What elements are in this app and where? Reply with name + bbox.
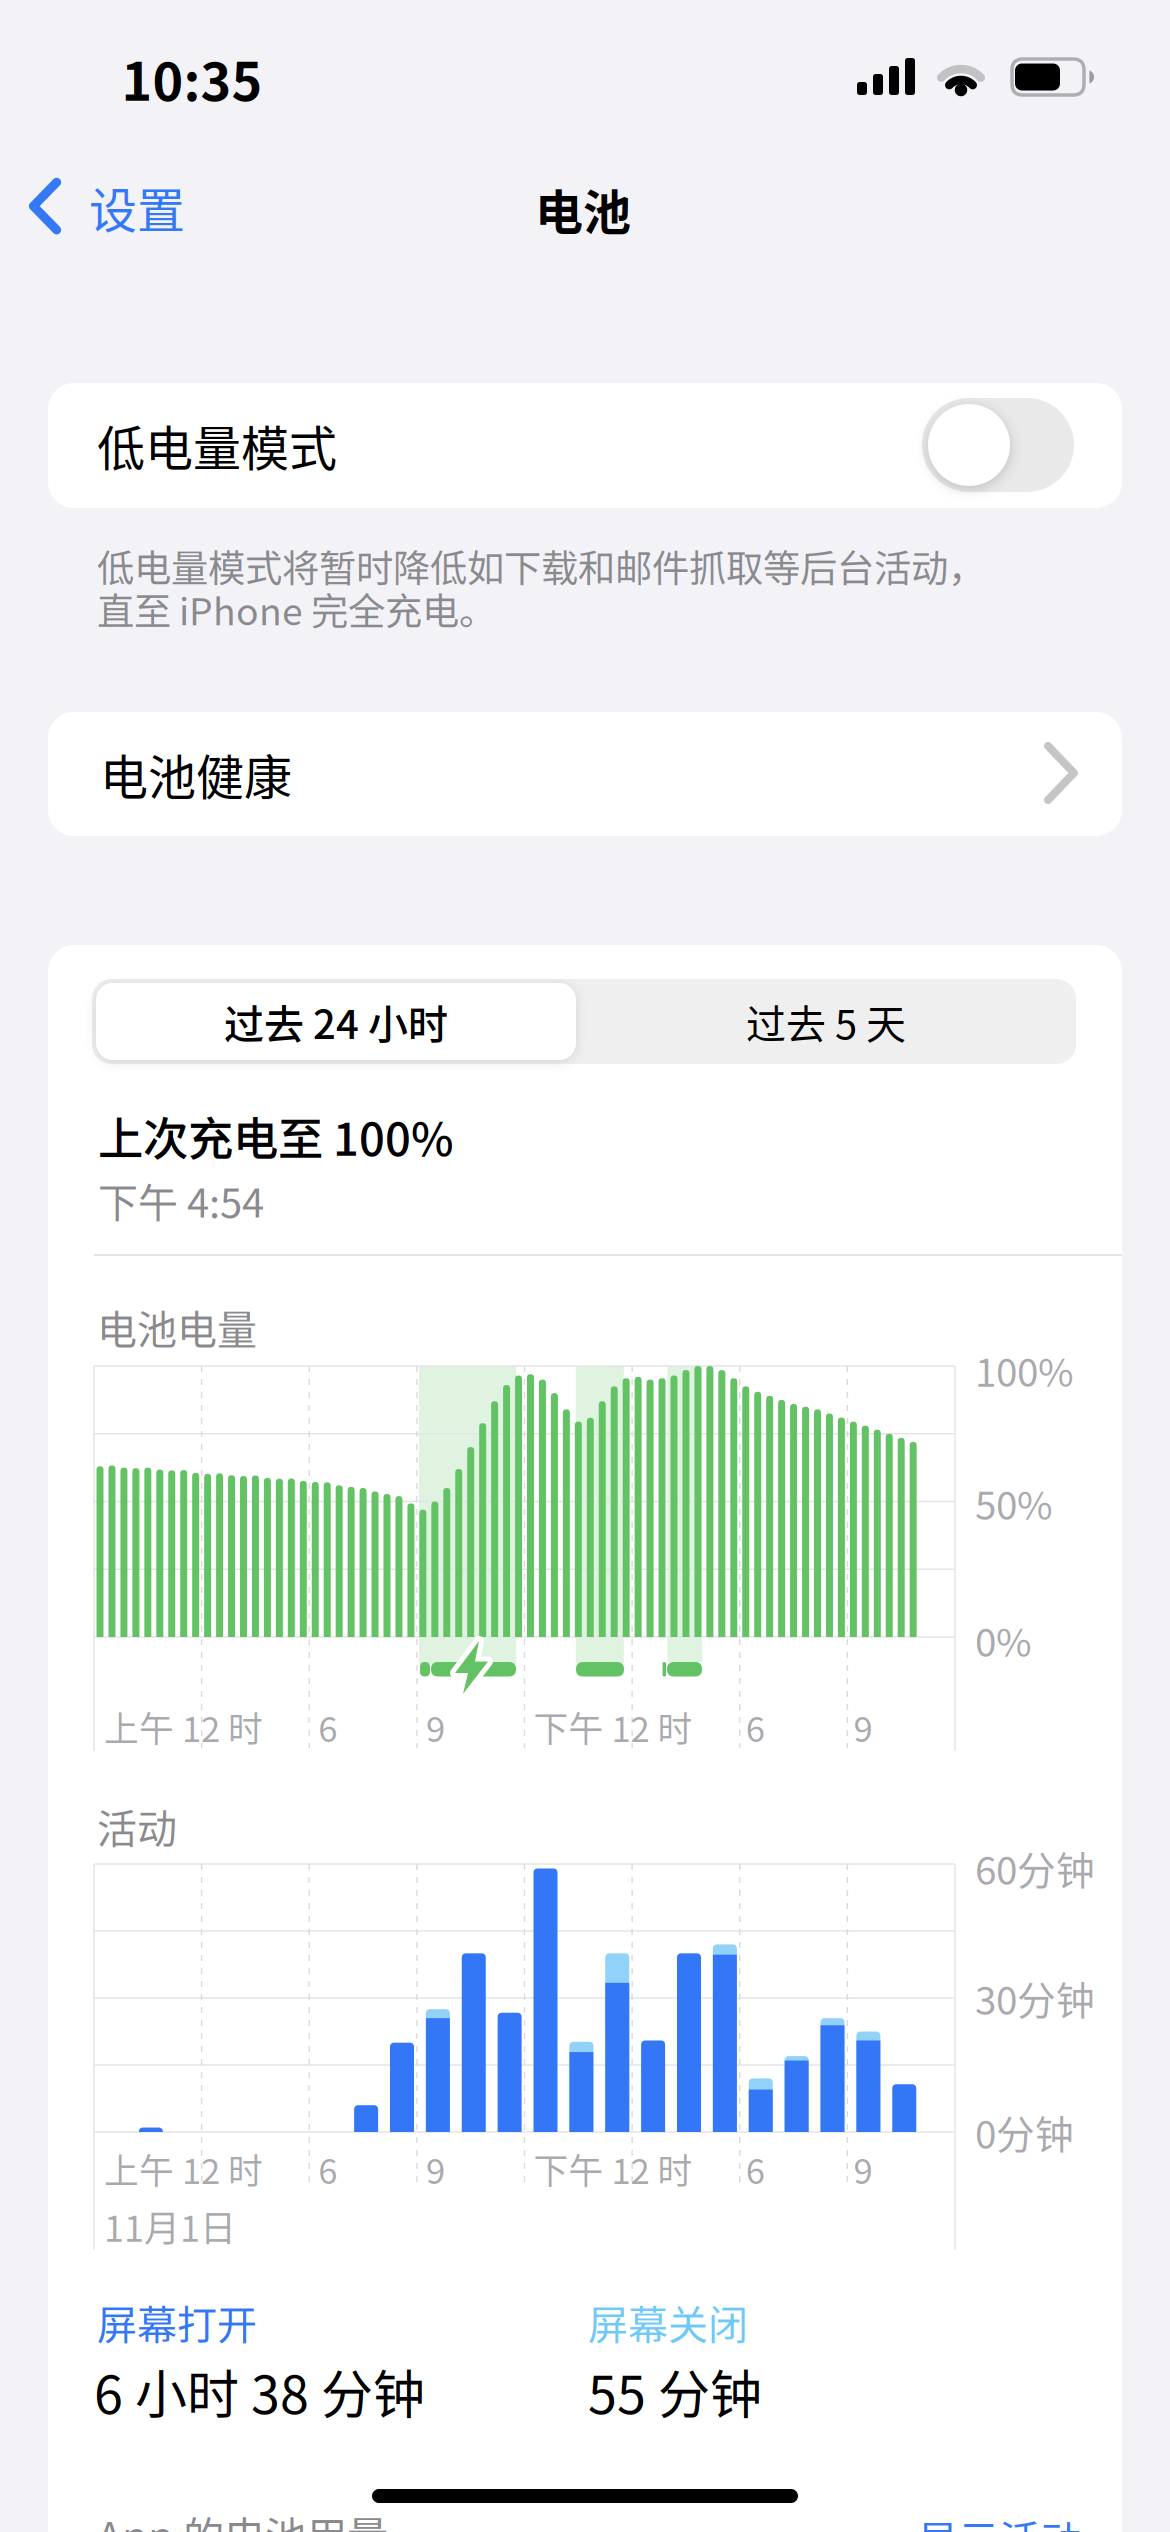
button[interactable]: 低电量模式: [922, 398, 1074, 492]
staticText: 55 分钟: [588, 2354, 762, 2428]
staticText: 电池: [535, 175, 631, 243]
staticText: 下午 12 时: [533, 1702, 692, 1751]
staticText: 9: [426, 2144, 445, 2193]
button[interactable]: 电池健康: [48, 712, 1122, 836]
staticText: 11月1日: [104, 2201, 236, 2251]
staticText: 上次充电至 100%: [98, 1104, 454, 1168]
staticText: 6: [746, 1702, 765, 1751]
staticText: 屏幕打开: [97, 2294, 257, 2350]
staticText: 活动: [97, 1798, 177, 1854]
staticText: 9: [853, 1702, 872, 1751]
staticText: 0%: [975, 1613, 1032, 1667]
staticText: App 的电池用量: [97, 2505, 388, 2532]
button[interactable]: 显示活动: [0, 0, 1170, 2532]
staticText: 下午 4:54: [98, 1172, 264, 1228]
staticText: 6: [318, 1702, 337, 1751]
staticText: 电池电量: [97, 1299, 257, 1355]
staticText: 屏幕关闭: [588, 2294, 748, 2350]
staticText: 过去 5 天: [746, 993, 906, 1050]
staticText: 30分钟: [975, 1971, 1095, 2025]
staticText: 下午 12 时: [533, 2144, 692, 2193]
staticText: 6: [318, 2144, 337, 2193]
staticText: 直至 iPhone 完全充电。: [97, 583, 496, 635]
button[interactable]: 设置: [25, 162, 245, 252]
staticText: 0分钟: [975, 2105, 1074, 2159]
staticText: 上午 12 时: [104, 2144, 263, 2193]
staticText: 低电量模式: [97, 411, 337, 479]
staticText: 电池健康: [100, 740, 292, 808]
staticText: 9: [853, 2144, 872, 2193]
staticText: 100%: [975, 1343, 1074, 1397]
button[interactable]: 过去 24 小时: [96, 983, 576, 1060]
staticText: 6 小时 38 分钟: [94, 2354, 425, 2428]
staticText: 过去 24 小时: [224, 993, 448, 1050]
staticText: 低电量模式将暂时降低如下载和邮件抓取等后台活动，: [97, 540, 985, 592]
staticText: 上午 12 时: [104, 1702, 263, 1751]
staticText: 50%: [975, 1476, 1053, 1530]
staticText: 显示活动: [917, 2509, 1081, 2532]
staticText: 设置: [89, 173, 185, 241]
staticText: 9: [426, 1702, 445, 1751]
staticText: 10:35: [121, 41, 262, 115]
staticText: 60分钟: [975, 1841, 1095, 1895]
button[interactable]: 过去 5 天: [586, 983, 1066, 1060]
staticText: 6: [746, 2144, 765, 2193]
